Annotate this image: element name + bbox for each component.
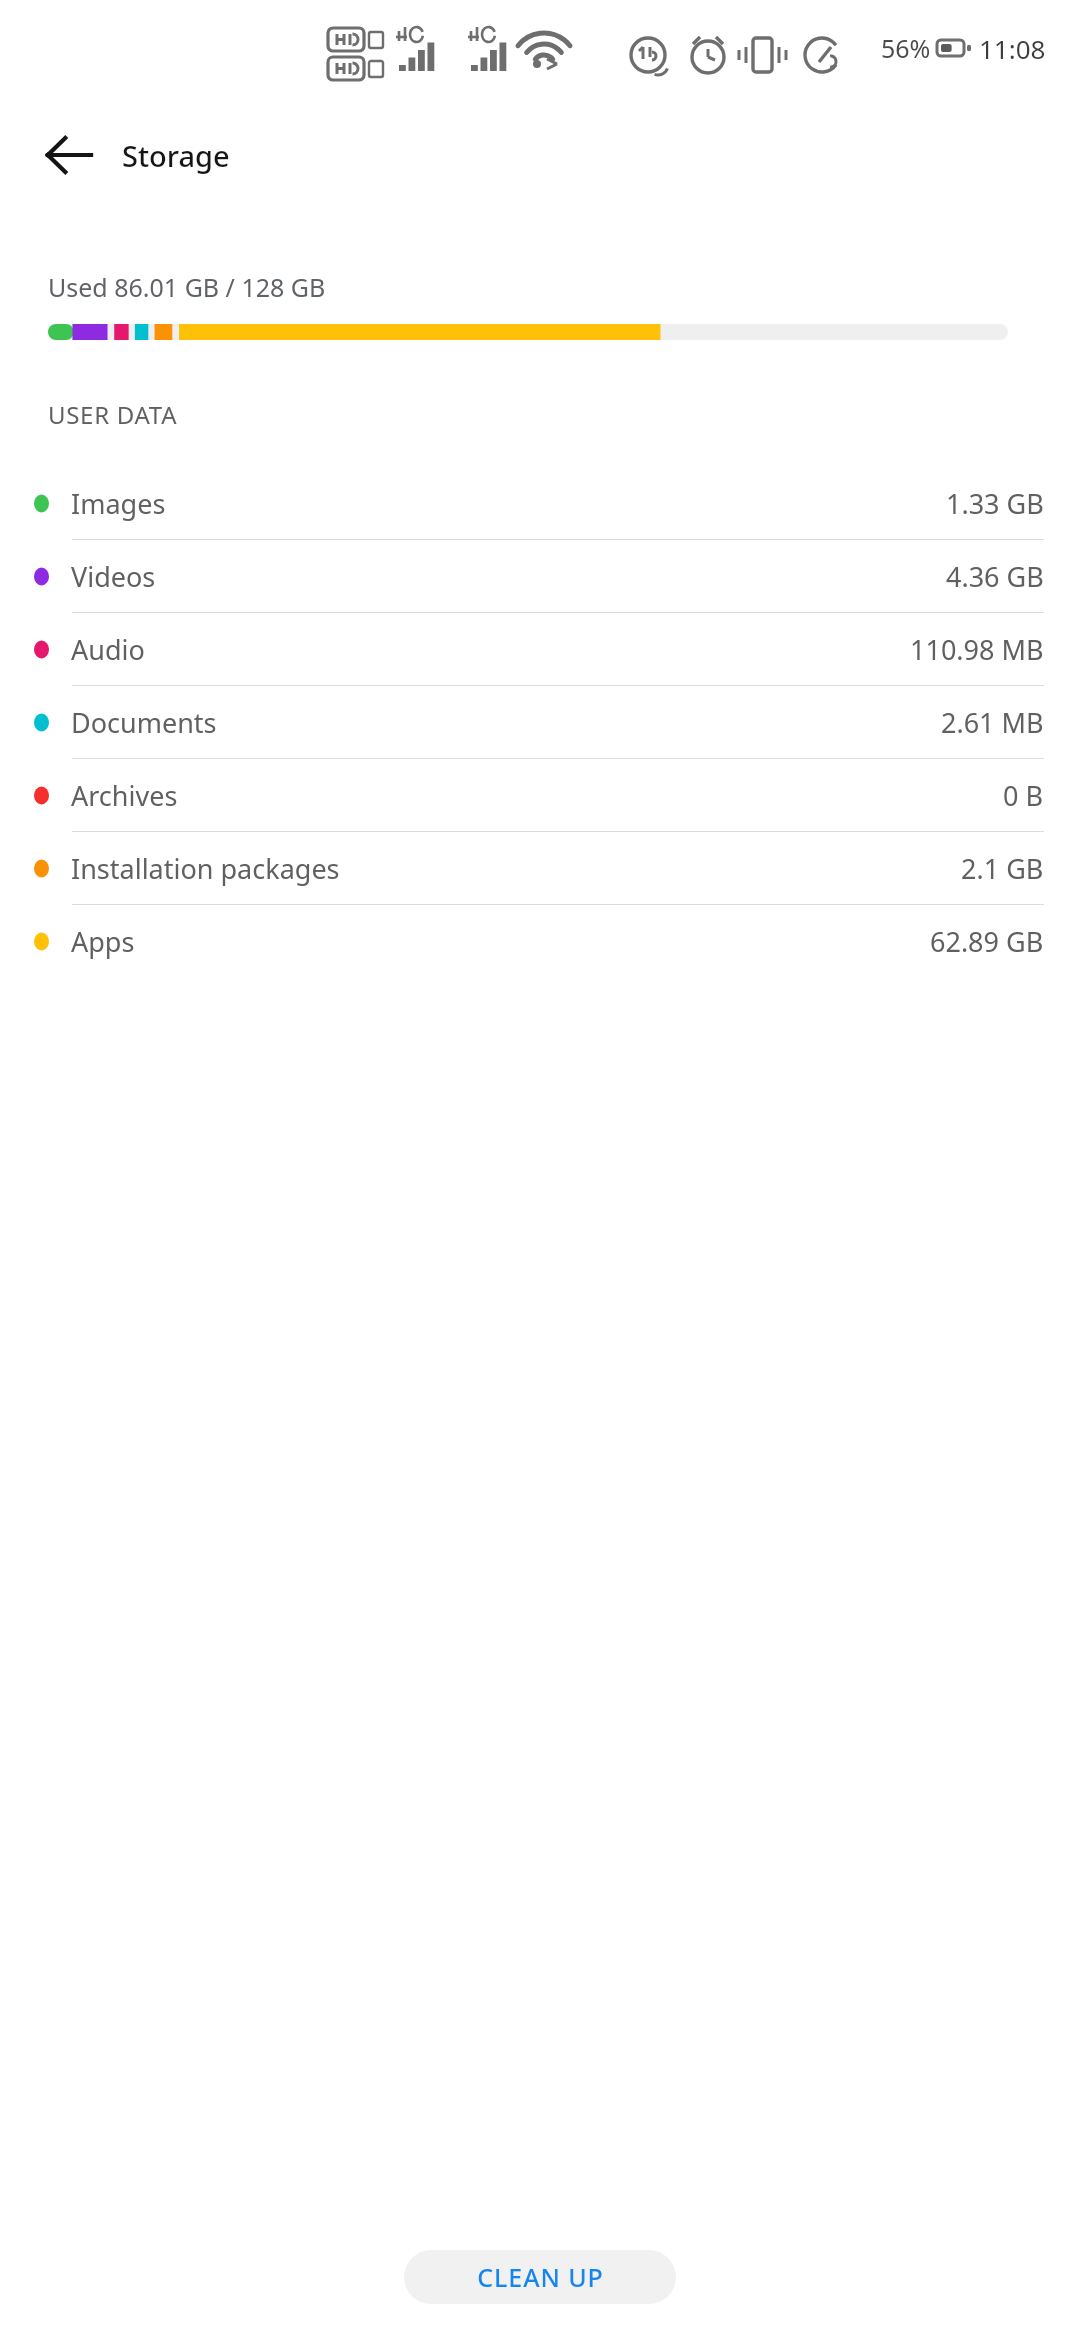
staticText: 110.98 MB (910, 631, 1044, 668)
staticText: 0 B (1003, 777, 1044, 814)
button[interactable]: Back (30, 116, 108, 194)
button[interactable]: CLEAN UP (404, 2250, 676, 2304)
staticText: Apps (71, 923, 135, 960)
button[interactable]: Images (0, 467, 1080, 540)
button[interactable]: Apps (0, 905, 1080, 978)
staticText: Archives (71, 777, 178, 814)
staticText: 56% (881, 31, 931, 65)
button[interactable]: Documents (0, 686, 1080, 759)
staticText: 2.1 GB (961, 850, 1044, 887)
staticText: 62.89 GB (930, 923, 1044, 960)
staticText: 2.61 MB (941, 704, 1044, 741)
staticText: 1.33 GB (946, 485, 1044, 522)
staticText: Documents (71, 704, 217, 741)
staticText: Videos (71, 558, 156, 595)
button[interactable]: Archives (0, 759, 1080, 832)
staticText: Audio (71, 631, 145, 668)
staticText: Images (71, 485, 166, 522)
button[interactable]: Audio (0, 613, 1080, 686)
staticText: Storage (122, 136, 230, 175)
button[interactable]: Installation packages (0, 832, 1080, 905)
staticText: USER DATA (48, 398, 178, 431)
staticText: Used 86.01 GB / 128 GB (48, 270, 326, 304)
staticText: 11:08 (979, 31, 1046, 66)
button[interactable]: Videos (0, 540, 1080, 613)
staticText: 4.36 GB (946, 558, 1044, 595)
staticText: CLEAN UP (477, 2260, 604, 2294)
staticText: Installation packages (71, 850, 340, 887)
